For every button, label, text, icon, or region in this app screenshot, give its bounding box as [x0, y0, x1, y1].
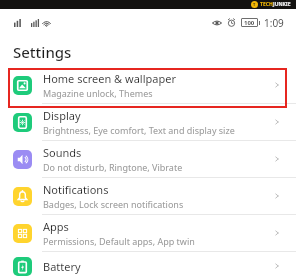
staticText: Display [43, 108, 81, 123]
button[interactable]: Home screen & wallpaper [0, 67, 296, 103]
other: Open Notifications [272, 191, 282, 201]
other: Open Display [272, 117, 282, 127]
other: Open Apps [272, 228, 282, 238]
staticText: Permissions, Default apps, App twin [43, 235, 195, 247]
staticText: Badges, Lock screen notifications [43, 198, 184, 210]
other: Open Sounds [272, 154, 282, 164]
staticText: T [253, 2, 256, 7]
staticText: JUNKIE [273, 1, 291, 8]
staticText: Sounds [43, 145, 82, 160]
staticText: Settings [13, 42, 72, 62]
button[interactable]: Sounds [0, 141, 296, 177]
staticText: Do not disturb, Ringtone, Vibrate [43, 161, 183, 173]
staticText: 1:09 [264, 16, 284, 30]
staticText: Notifications [43, 182, 109, 197]
staticText: Battery [43, 259, 81, 274]
button[interactable]: Battery [0, 252, 296, 280]
staticText: Apps [43, 219, 69, 234]
staticText: Magazine unlock, Themes [43, 87, 153, 99]
button[interactable]: Notifications [0, 178, 296, 214]
button[interactable]: Display [0, 104, 296, 140]
staticText: 100 [244, 19, 255, 27]
other: Open Home screen & wallpaper [272, 80, 282, 90]
staticText: Brightness, Eye comfort, Text and displa… [43, 124, 235, 136]
other: Open Battery [272, 261, 282, 271]
staticText: TECH [260, 1, 273, 8]
button[interactable]: Apps [0, 215, 296, 251]
staticText: Home screen & wallpaper [43, 71, 176, 86]
